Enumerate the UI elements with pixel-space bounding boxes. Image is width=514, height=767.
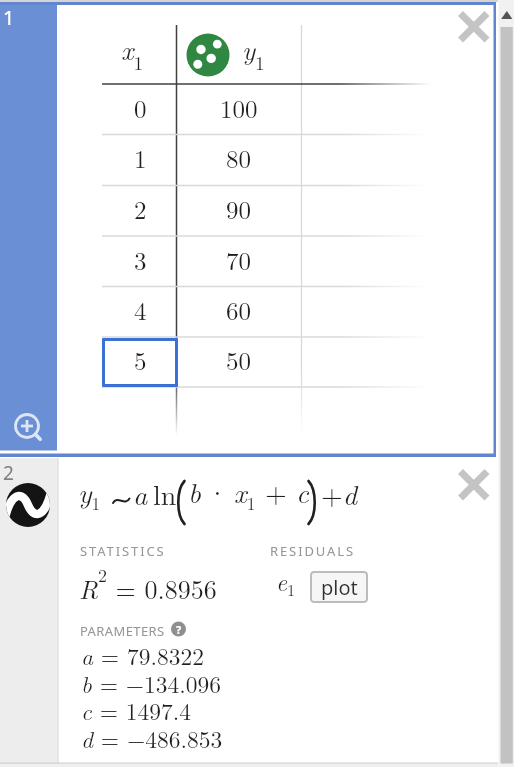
staticText: STATISTICS	[80, 542, 166, 558]
staticText: +d	[321, 473, 358, 513]
staticText: PARAMETERS	[80, 622, 165, 638]
staticText: 100	[220, 90, 258, 125]
staticText: plot	[321, 574, 358, 601]
staticText: y1	[78, 471, 101, 515]
staticText: c = 1497.4	[81, 694, 192, 727]
staticText: 3	[134, 242, 147, 277]
staticText: a ln	[133, 473, 177, 513]
button[interactable]: plot	[310, 571, 368, 603]
staticText: 4	[134, 292, 147, 327]
staticText: 1	[134, 140, 147, 175]
staticText: d = −486.853	[81, 722, 223, 755]
staticText: 2	[134, 191, 147, 226]
staticText: ?	[176, 622, 182, 637]
staticText: y1	[242, 30, 265, 72]
button[interactable]	[12, 411, 42, 441]
staticText: R2 = 0.8956	[79, 562, 217, 604]
staticText: RESIDUALS	[270, 542, 356, 558]
staticText: 70	[226, 242, 252, 277]
button[interactable]	[102, 338, 178, 387]
staticText: 50	[226, 342, 252, 377]
staticText: 2	[3, 460, 14, 484]
staticText: e1	[276, 564, 296, 601]
staticText: a = 79.8322	[81, 639, 204, 672]
staticText: 1	[3, 4, 15, 28]
staticText: 90	[226, 191, 252, 226]
staticText: 80	[226, 140, 252, 175]
button[interactable]	[455, 466, 493, 504]
staticText: 5	[134, 342, 147, 377]
staticText: b · x1 + c	[188, 471, 309, 515]
button[interactable]	[498, 0, 514, 26]
staticText: 0	[134, 90, 147, 125]
staticText: b = −134.096	[81, 667, 222, 700]
staticText: 60	[226, 292, 252, 327]
staticText: x1	[121, 30, 144, 72]
button[interactable]	[455, 8, 493, 46]
